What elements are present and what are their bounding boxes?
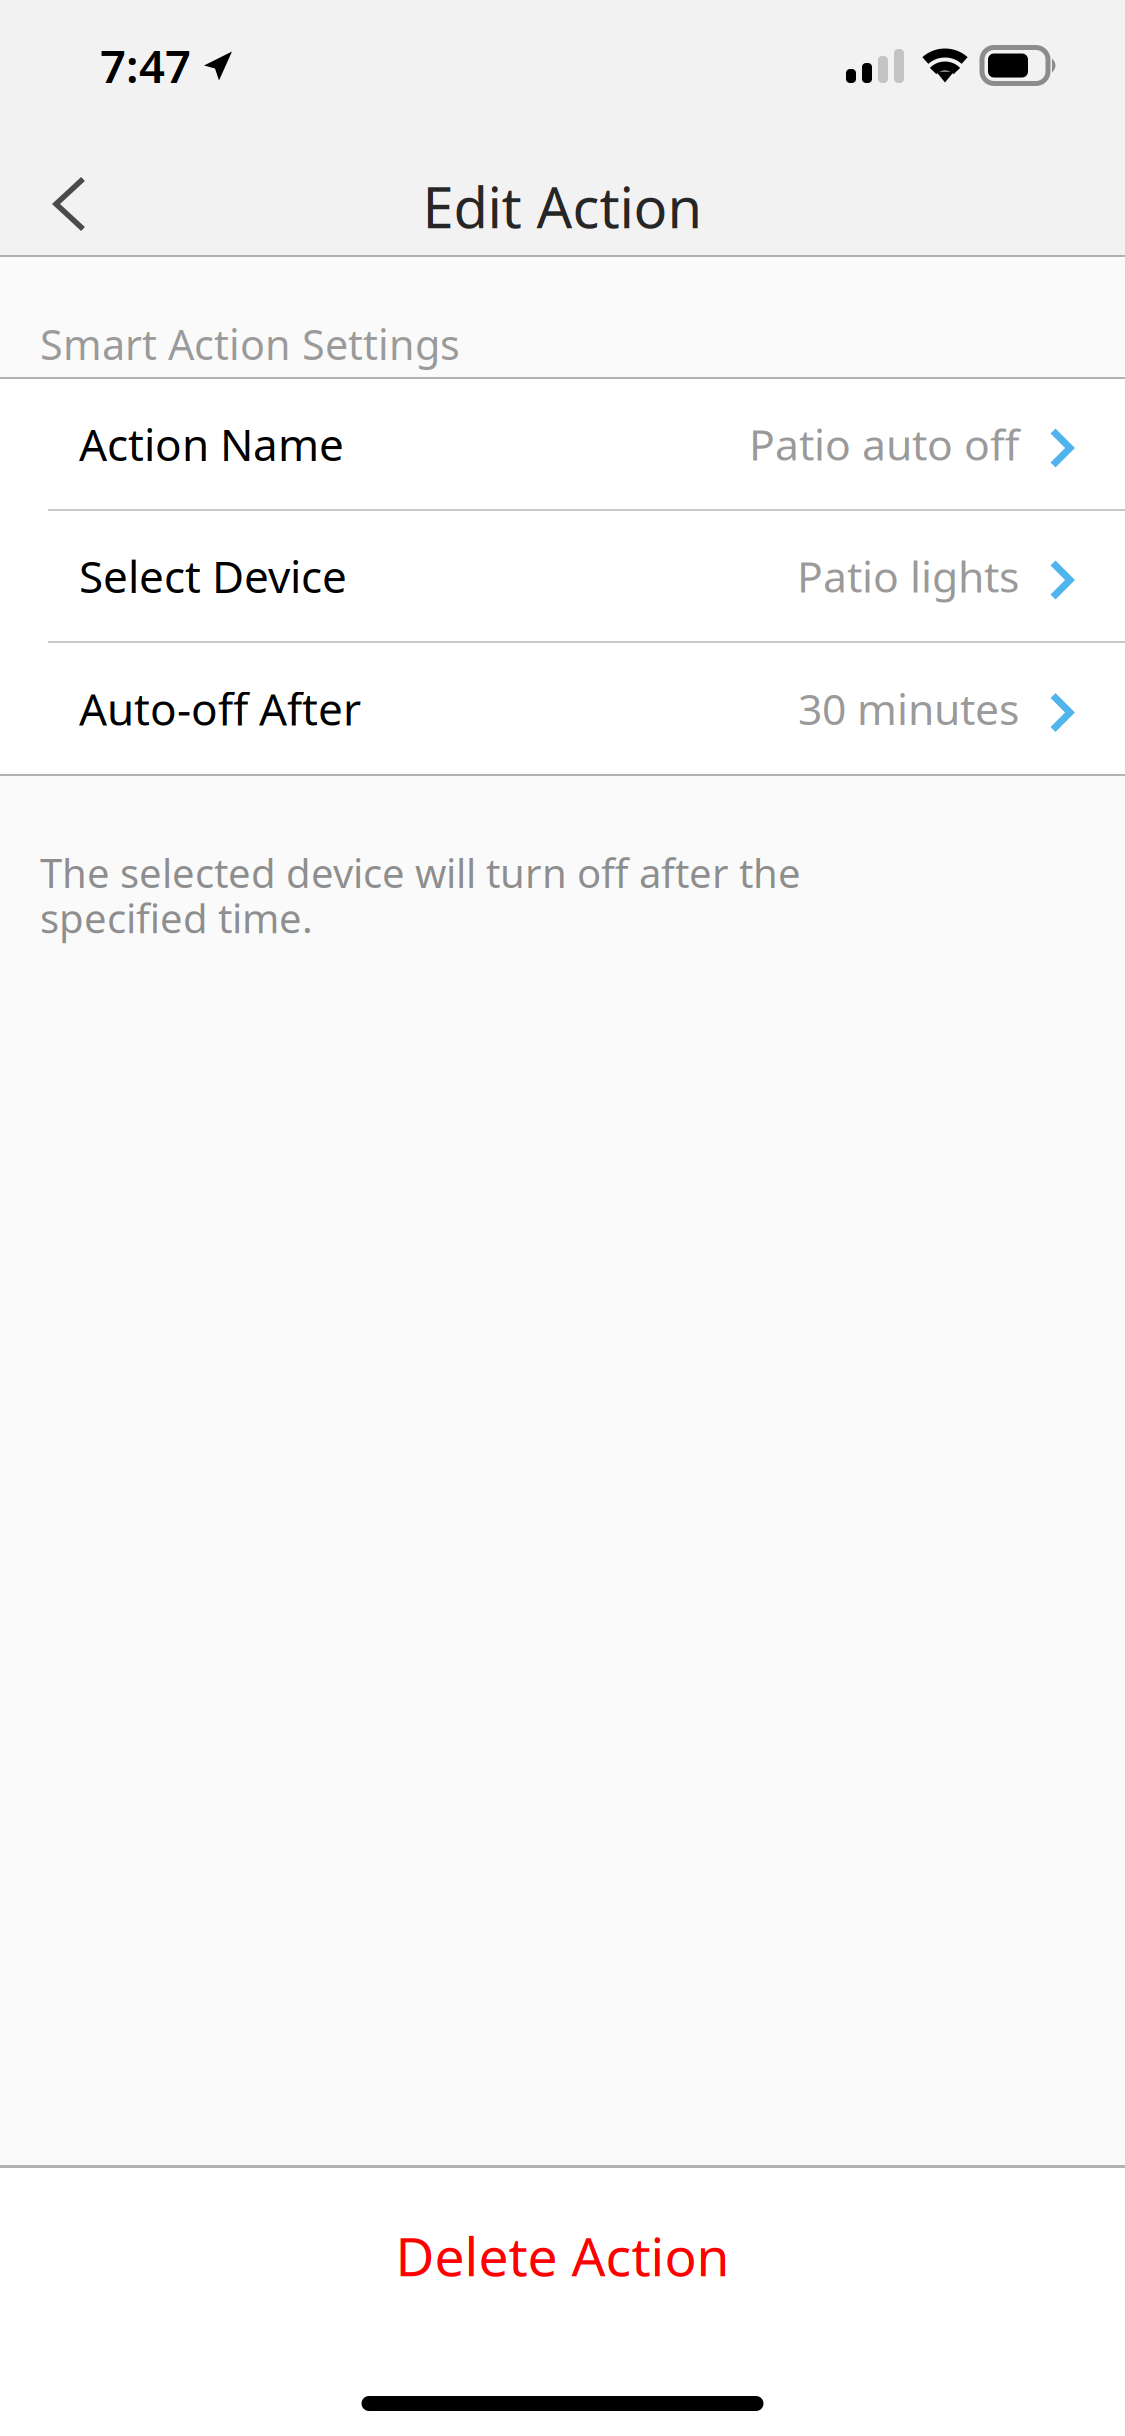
staticText: Patio lights — [797, 548, 1019, 604]
button[interactable]: Action Name — [0, 379, 1125, 509]
button[interactable]: Auto-off After — [0, 643, 1125, 774]
staticText: 30 minutes — [798, 680, 1019, 737]
staticText: Delete Action — [395, 2220, 729, 2291]
staticText: Patio auto off — [749, 416, 1019, 472]
button[interactable]: Delete Action — [0, 2168, 1125, 2321]
staticText: The selected device will turn off after … — [40, 846, 801, 899]
staticText: 7:47 — [100, 35, 191, 96]
staticText: Auto-off After — [79, 679, 361, 738]
staticText: Action Name — [79, 415, 344, 473]
staticText: Select Device — [79, 547, 347, 605]
button[interactable]: Back — [0, 132, 117, 254]
button[interactable]: Select Device — [0, 511, 1125, 641]
staticText: Edit Action — [422, 169, 702, 244]
staticText: Smart Action Settings — [40, 317, 460, 371]
staticText: specified time. — [40, 891, 313, 944]
